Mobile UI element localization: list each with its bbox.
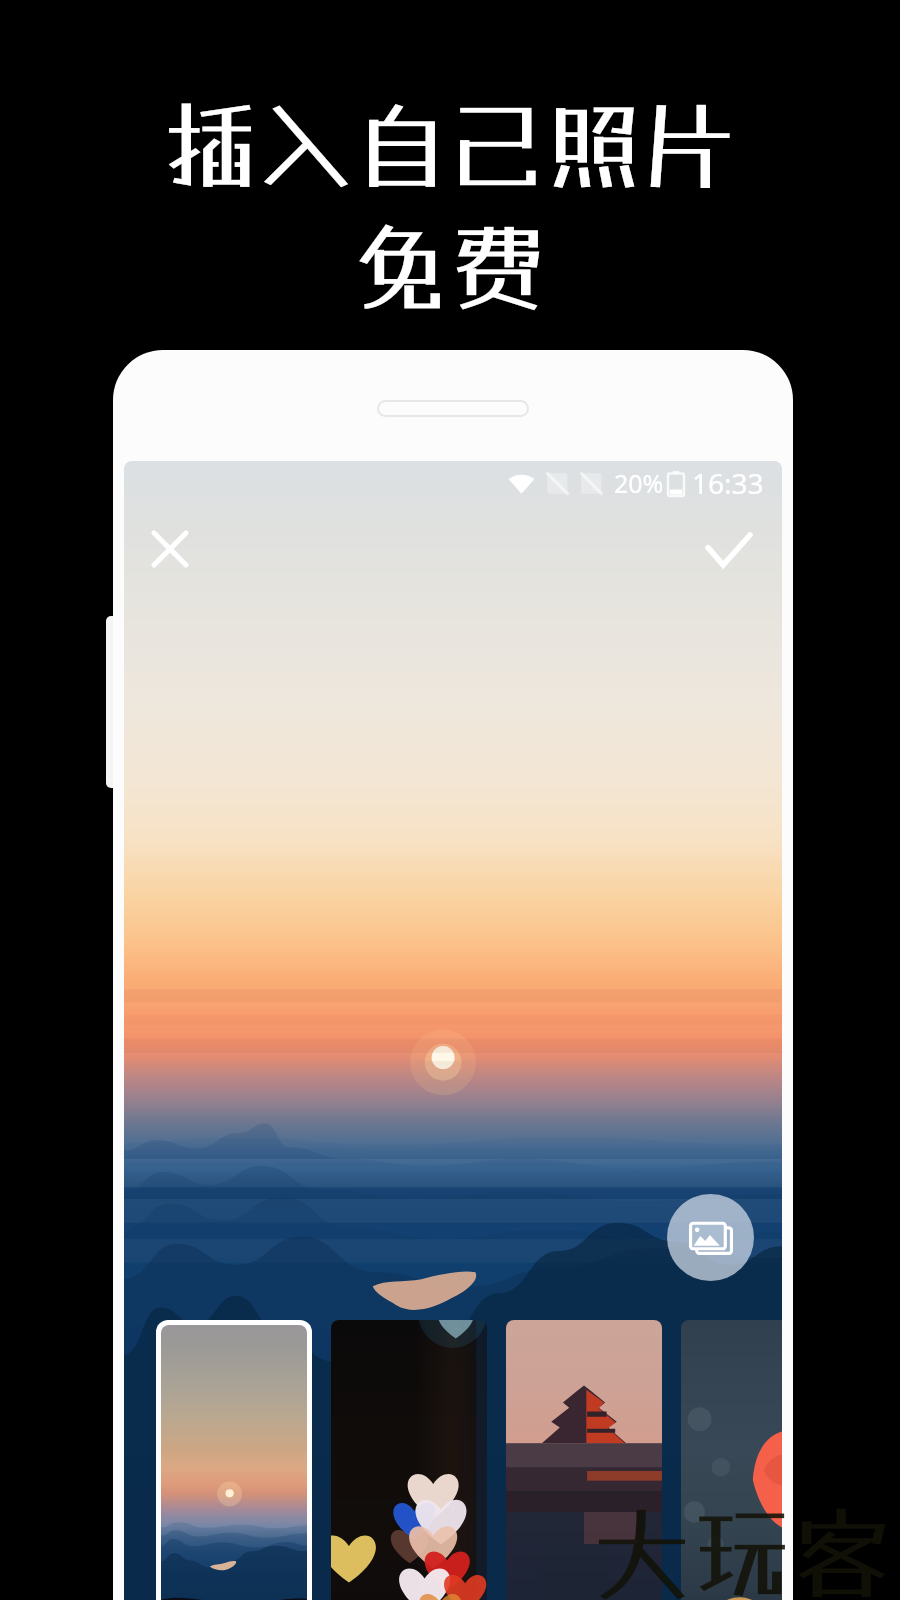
button[interactable]: Close xyxy=(138,517,202,581)
button[interactable]: Choose photo xyxy=(667,1194,754,1281)
staticText: 大玩客 xyxy=(592,1494,892,1600)
staticText: 20% xyxy=(614,466,664,500)
button[interactable]: Heart bokeh photo xyxy=(331,1320,487,1600)
button[interactable]: Sunset photo, selected xyxy=(161,1325,307,1600)
button[interactable]: Forbidden City photo xyxy=(506,1320,662,1600)
staticText: 16:33 xyxy=(692,464,764,502)
staticText: 免费 xyxy=(354,211,546,324)
button[interactable]: Rose photo xyxy=(681,1320,782,1600)
staticText: 插入自己照片 xyxy=(162,89,738,202)
button[interactable]: Confirm xyxy=(694,515,764,585)
